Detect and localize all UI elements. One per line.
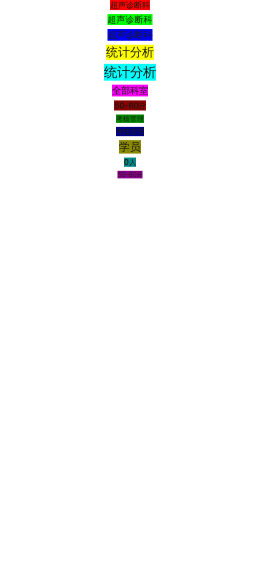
staticText: 统计分析: [104, 64, 156, 81]
staticText: 50-60分: [114, 100, 146, 110]
staticText: 全部科室: [112, 85, 148, 96]
staticText: 超声诊断科: [110, 0, 150, 10]
staticText: 50-60分: [117, 171, 142, 178]
staticText: 学员: [119, 140, 141, 153]
staticText: 考核管理: [116, 127, 144, 136]
staticText: 超声诊断科: [107, 29, 152, 41]
staticText: 统计分析: [106, 45, 154, 60]
staticText: 考核管理: [116, 114, 144, 123]
staticText: 超声诊断科: [107, 14, 152, 25]
staticText: 0人: [124, 158, 136, 167]
